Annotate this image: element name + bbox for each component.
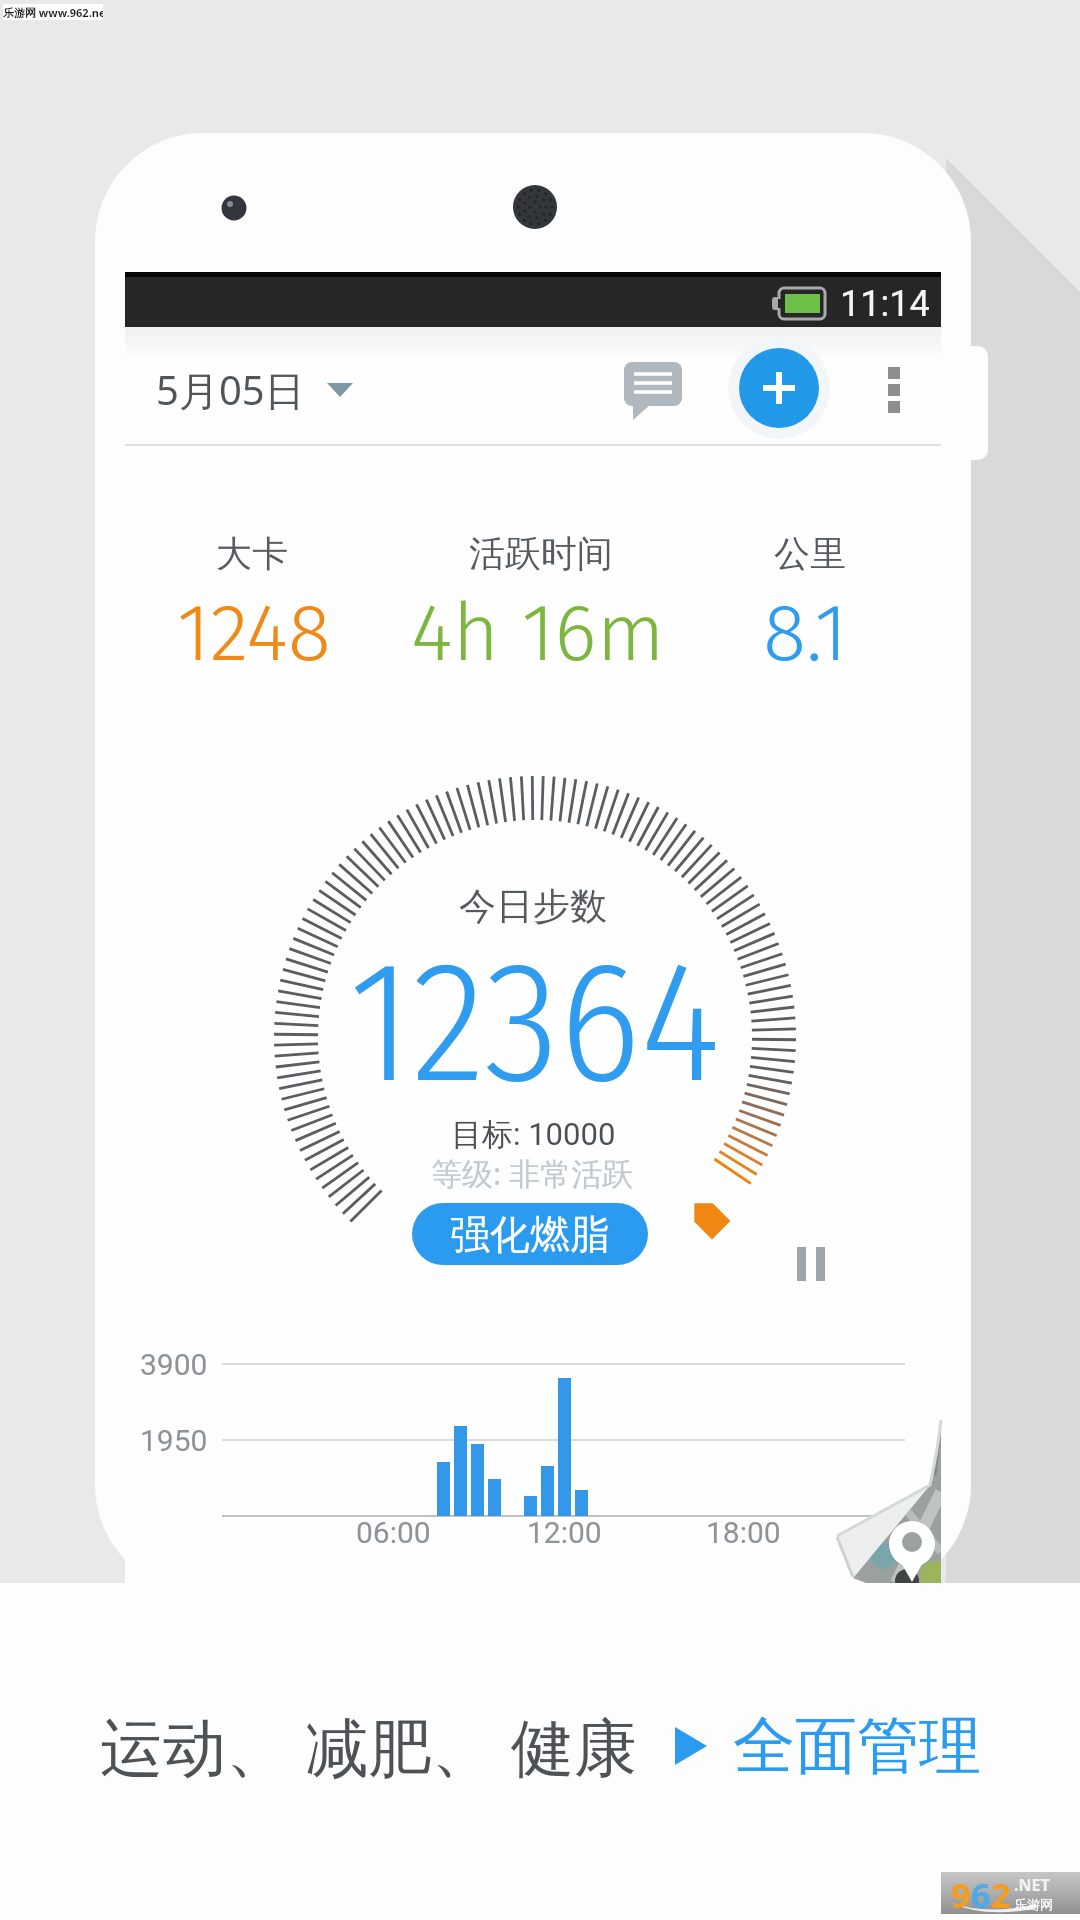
staticText: 大卡 — [216, 531, 288, 576]
staticText: 全面管理 — [733, 1707, 981, 1785]
staticText: .NET — [1014, 1874, 1050, 1896]
button[interactable]: 全面管理 — [675, 1707, 981, 1785]
staticText: 乐游网 www.962.net — [3, 5, 103, 20]
staticText: 目标: 10000 — [451, 1115, 616, 1154]
button[interactable] — [820, 1400, 941, 1583]
staticText: 强化燃脂 — [450, 1209, 610, 1259]
staticText: 12364 — [349, 921, 721, 1086]
staticText: 公里 — [774, 531, 846, 576]
staticText: 9 — [951, 1872, 971, 1914]
staticText: 活跃时间 — [469, 531, 613, 576]
staticText: 11:14 — [840, 283, 930, 323]
button[interactable] — [862, 346, 922, 430]
staticText: 运动、 减肥、 健康 — [100, 1703, 637, 1789]
staticText: 06:00 — [356, 1515, 431, 1550]
staticText: 今日步数 — [459, 883, 607, 929]
staticText: 1950 — [140, 1423, 208, 1458]
button[interactable]: 5月05日 — [140, 352, 370, 426]
staticText: 12:00 — [527, 1515, 602, 1550]
staticText: 1248 — [177, 585, 331, 675]
staticText: 3900 — [140, 1347, 208, 1382]
button[interactable] — [790, 1238, 836, 1290]
staticText: 5月05日 — [156, 362, 305, 417]
staticText: 8.1 — [763, 585, 848, 675]
button[interactable] — [727, 336, 831, 440]
staticText: 6 — [971, 1872, 991, 1914]
staticText: 等级: 非常活跃 — [431, 1152, 634, 1194]
staticText: 2 — [991, 1872, 1011, 1914]
staticText: 18:00 — [706, 1515, 781, 1550]
button[interactable]: 强化燃脂 — [412, 1203, 648, 1265]
staticText: 4h 16m — [411, 585, 665, 675]
button[interactable]: 9 — [941, 1872, 1080, 1914]
button[interactable] — [612, 350, 694, 426]
staticText: 乐游网 — [1014, 1896, 1053, 1912]
